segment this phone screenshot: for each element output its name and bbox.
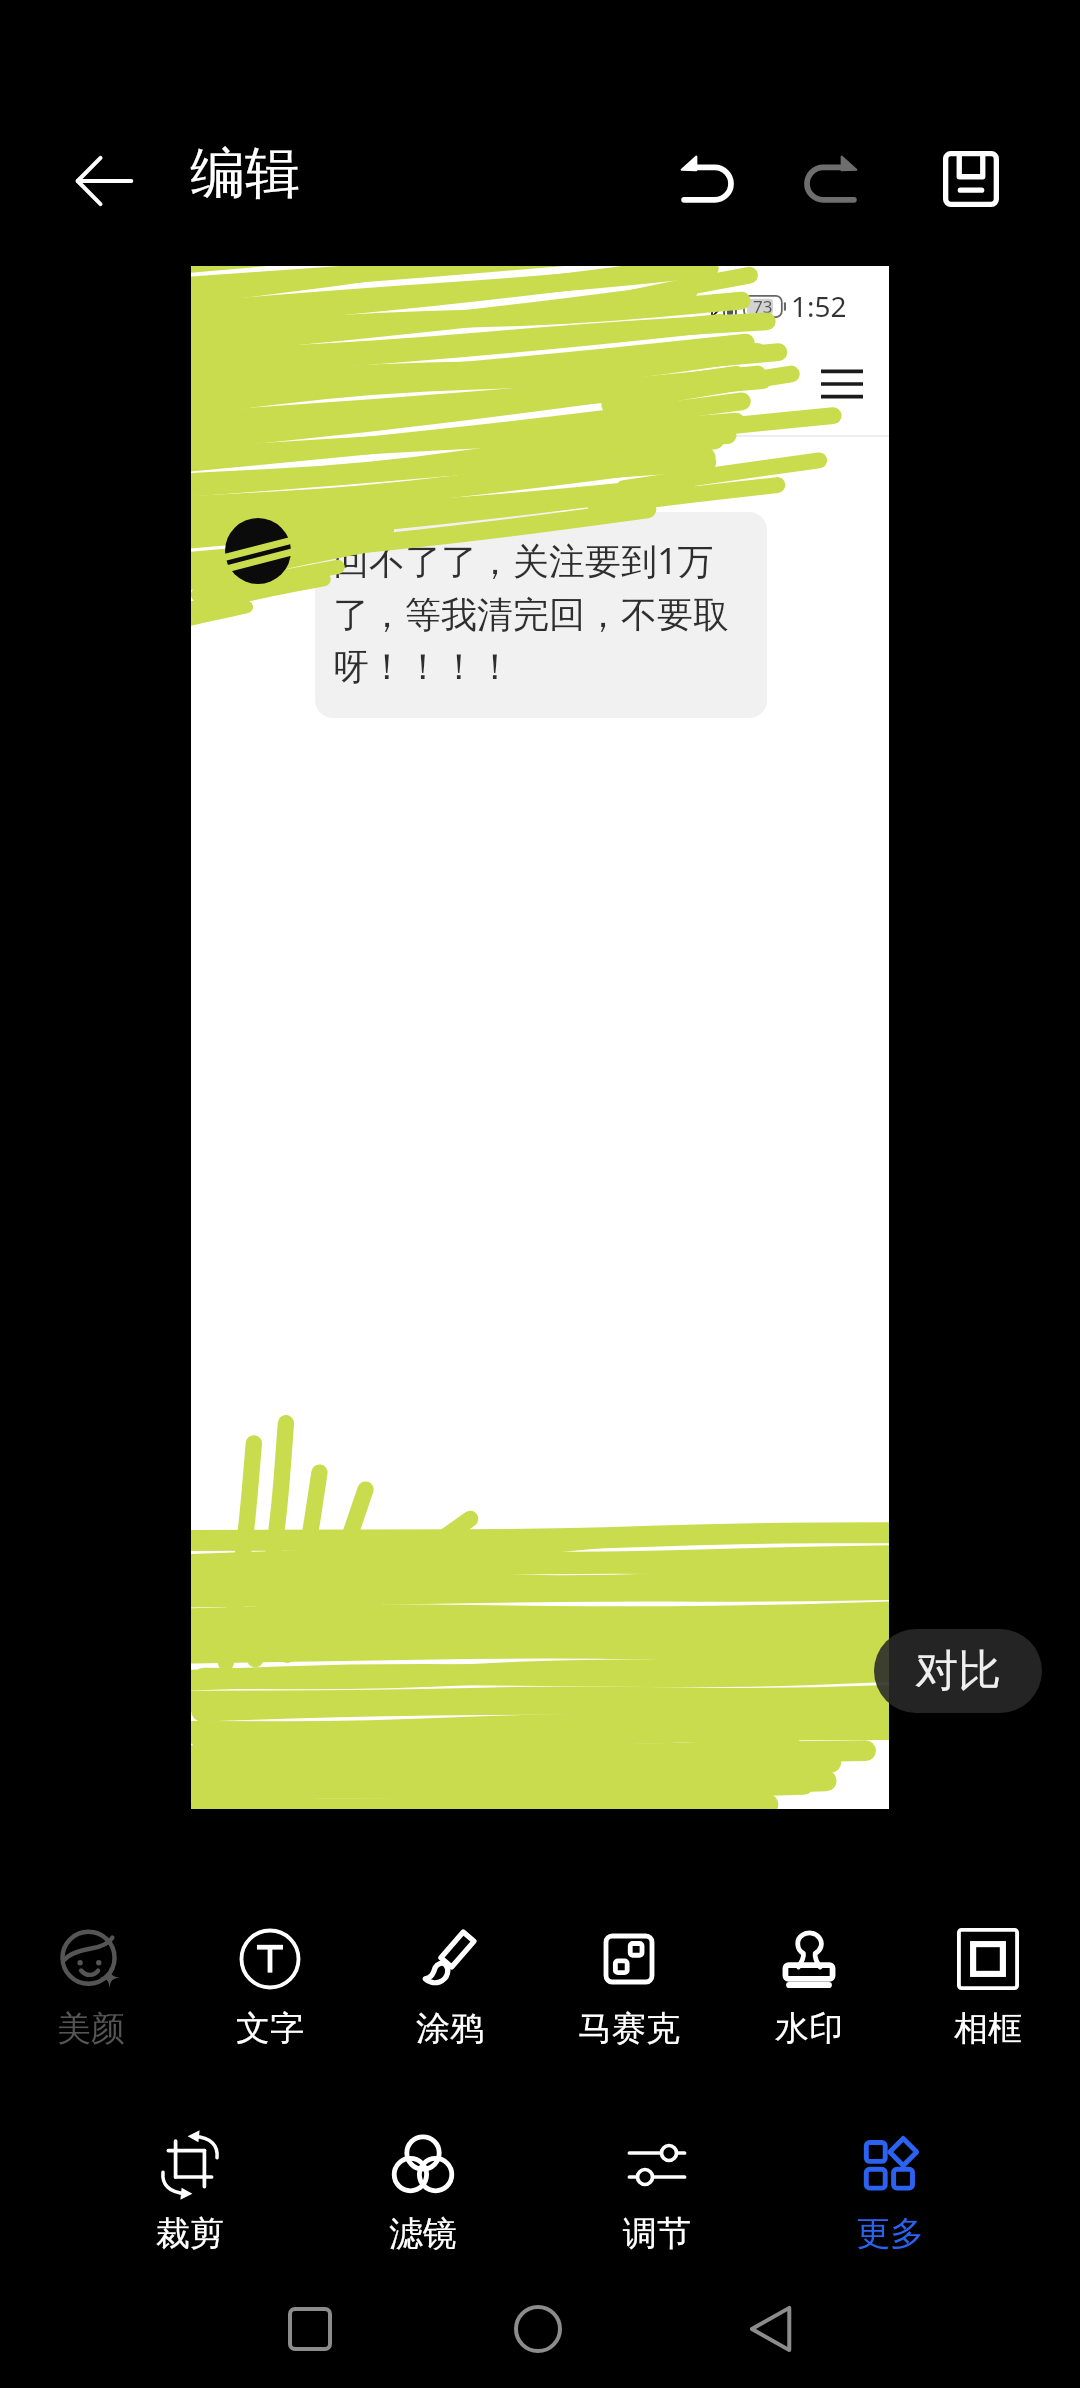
staticText: 73 bbox=[753, 295, 773, 318]
button[interactable]: 相框 bbox=[903, 1928, 1073, 2050]
staticText: 裁剪 bbox=[156, 2212, 224, 2255]
button[interactable]: 调节 bbox=[572, 2135, 742, 2255]
button[interactable]: 文字 bbox=[185, 1928, 355, 2050]
button[interactable]: 涂鸦 bbox=[365, 1928, 535, 2050]
staticText: 文字 bbox=[236, 2007, 304, 2050]
staticText: 水印 bbox=[775, 2007, 843, 2050]
button[interactable]: Back bbox=[724, 2281, 820, 2377]
button[interactable]: Home bbox=[490, 2281, 586, 2377]
button[interactable]: 美颜 bbox=[6, 1928, 176, 2050]
staticText: 1:52 bbox=[791, 287, 847, 325]
staticText: 滤镜 bbox=[389, 2212, 457, 2255]
staticText: 马赛克 bbox=[578, 2007, 680, 2050]
button[interactable]: Back bbox=[56, 133, 152, 229]
button[interactable]: 滤镜 bbox=[338, 2135, 508, 2255]
staticText: 相框 bbox=[954, 2007, 1022, 2050]
button[interactable]: Recent apps bbox=[262, 2281, 358, 2377]
button[interactable]: 对比 bbox=[874, 1629, 1042, 1713]
button[interactable]: 水印 bbox=[724, 1928, 894, 2050]
button[interactable]: 马赛克 bbox=[544, 1928, 714, 2050]
staticText: 调节 bbox=[623, 2212, 691, 2255]
button[interactable]: 编辑 bbox=[190, 139, 300, 208]
button[interactable]: Redo bbox=[780, 132, 876, 228]
staticText: 对比 bbox=[915, 1644, 1001, 1698]
staticText: 编辑 bbox=[190, 139, 300, 208]
staticText: 更多 bbox=[856, 2212, 924, 2255]
button[interactable]: Save bbox=[923, 131, 1019, 227]
staticText: 涂鸦 bbox=[416, 2007, 484, 2050]
staticText: 美颜 bbox=[57, 2007, 125, 2050]
button[interactable]: Undo bbox=[662, 132, 758, 228]
staticText: 回不了了，关注要到1万了，等我清完回，不要取呀！！！！ bbox=[333, 536, 755, 690]
button[interactable]: 裁剪 bbox=[105, 2135, 275, 2255]
button[interactable]: 更多 bbox=[805, 2135, 975, 2255]
